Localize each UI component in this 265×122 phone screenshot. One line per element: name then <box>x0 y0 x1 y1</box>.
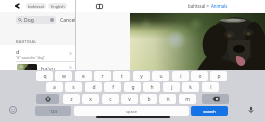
button[interactable]: i <box>172 71 189 81</box>
staticText: h <box>150 84 154 91</box>
button[interactable]: Backspace <box>202 94 229 104</box>
button[interactable]: bahtssal > <box>188 3 228 9</box>
staticText: search <box>203 109 216 114</box>
staticText: ha'yu <box>41 65 55 72</box>
staticText: m <box>185 96 190 103</box>
button[interactable]: w <box>55 71 72 81</box>
staticText: BAHTSSAL <box>16 39 37 44</box>
staticText: u <box>159 73 163 80</box>
button[interactable]: l <box>202 82 219 92</box>
staticText: a <box>53 84 56 91</box>
button[interactable]: ha'yu <box>0 62 75 70</box>
staticText: bahtssal > <box>188 3 211 9</box>
button[interactable]: bahtssal <box>26 3 46 9</box>
button[interactable]: q <box>36 71 53 81</box>
staticText: l <box>210 84 212 91</box>
staticText: e <box>82 73 85 80</box>
button[interactable]: English <box>48 3 67 9</box>
staticText: p <box>217 73 221 80</box>
button[interactable]: j <box>163 82 180 92</box>
staticText: g <box>131 84 135 91</box>
staticText: Dog <box>24 17 34 24</box>
button[interactable]: o <box>191 71 208 81</box>
button[interactable]: Dictionary <box>95 2 103 10</box>
staticText: w <box>62 73 66 80</box>
staticText: k <box>189 84 192 91</box>
button[interactable]: b <box>140 94 157 104</box>
staticText: f <box>112 84 114 91</box>
button[interactable]: Dog <box>16 16 56 24</box>
button[interactable]: r <box>94 71 111 81</box>
staticText: Animals <box>211 3 228 9</box>
button[interactable]: g <box>124 82 141 92</box>
staticText: English <box>51 4 65 9</box>
staticText: v <box>128 96 131 103</box>
button[interactable]: d <box>0 45 75 61</box>
staticText: j <box>171 84 173 91</box>
staticText: z <box>70 96 73 103</box>
staticText: d <box>92 84 96 91</box>
staticText: d <box>16 48 20 55</box>
button[interactable]: v <box>121 94 138 104</box>
button[interactable]: s <box>65 82 82 92</box>
button[interactable]: h <box>143 82 160 92</box>
button[interactable]: x <box>82 94 99 104</box>
staticText: q <box>43 73 47 80</box>
button[interactable]: d <box>85 82 102 92</box>
button[interactable]: z <box>63 94 80 104</box>
button[interactable]: n <box>159 94 176 104</box>
staticText: c <box>109 96 112 103</box>
staticText: n <box>166 96 170 103</box>
staticText: i <box>180 73 182 80</box>
button[interactable]: Shift <box>36 94 59 104</box>
staticText: "d" sound in "dog" <box>16 55 45 60</box>
button[interactable]: Emoji keyboard <box>9 106 17 114</box>
button[interactable]: p <box>210 71 227 81</box>
button[interactable]: a <box>46 82 63 92</box>
button[interactable]: k <box>182 82 199 92</box>
button[interactable]: t <box>113 71 130 81</box>
staticText: y <box>140 73 143 80</box>
staticText: bahtssal <box>28 4 44 9</box>
staticText: Cancel <box>60 17 76 24</box>
button[interactable]: 123 <box>35 106 71 116</box>
button[interactable]: Back <box>13 2 21 10</box>
staticText: x <box>89 96 92 103</box>
button[interactable]: Dictate <box>247 106 255 114</box>
staticText: o <box>198 73 202 80</box>
button[interactable]: search <box>191 106 228 116</box>
button[interactable]: m <box>179 94 196 104</box>
staticText: space <box>126 109 137 114</box>
button[interactable]: f <box>104 82 121 92</box>
button[interactable]: Cancel <box>60 16 76 24</box>
button[interactable]: e <box>75 71 92 81</box>
button[interactable]: u <box>152 71 169 81</box>
staticText: r <box>101 73 104 80</box>
staticText: t <box>121 73 123 80</box>
button[interactable]: c <box>102 94 119 104</box>
staticText: 123 <box>50 109 57 114</box>
button[interactable]: y <box>133 71 150 81</box>
staticText: b <box>147 96 151 103</box>
button[interactable]: space <box>74 106 189 116</box>
staticText: s <box>72 84 75 91</box>
